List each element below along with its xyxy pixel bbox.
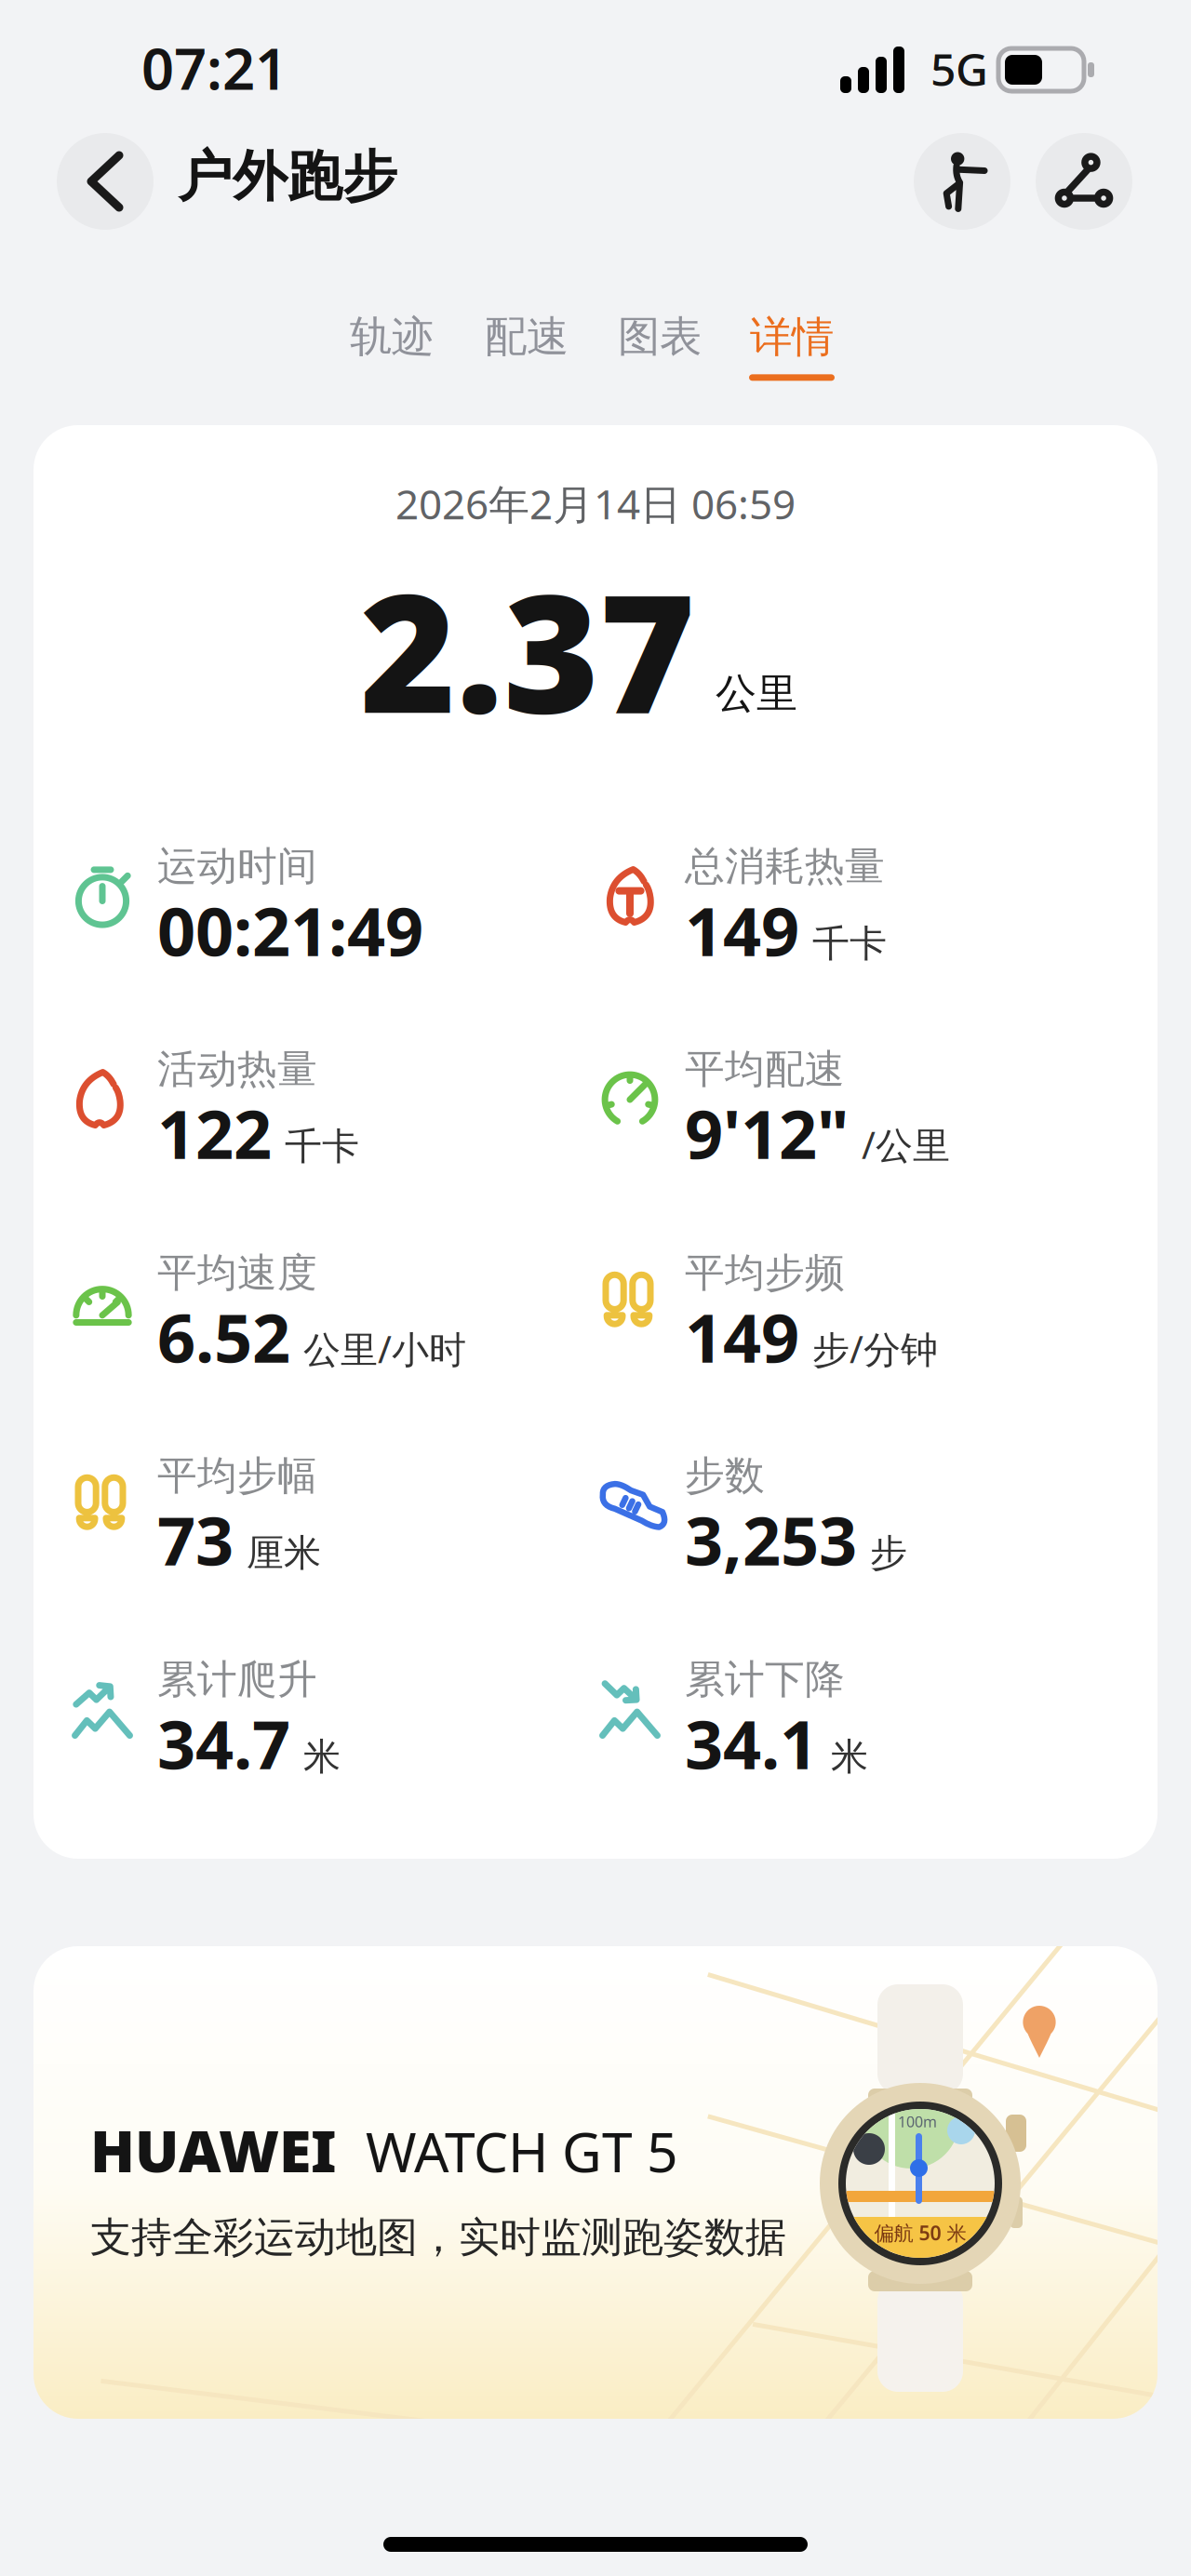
staticText: 步/分钟 xyxy=(812,1324,938,1373)
staticText: 2.37 xyxy=(360,541,695,758)
staticText: 千卡 xyxy=(812,921,887,967)
staticText: 3,253 xyxy=(685,1495,857,1584)
staticText: 149 xyxy=(685,886,799,975)
button[interactable]: Back xyxy=(57,133,154,230)
staticText: 配速 xyxy=(485,311,569,363)
staticText: 厘米 xyxy=(247,1530,321,1576)
staticText: 100m xyxy=(898,2112,937,2132)
staticText: HUAWEI WATCH GT 5 xyxy=(90,2111,678,2188)
staticText: 149 xyxy=(685,1292,799,1381)
staticText: 累计爬升 xyxy=(157,1655,317,1704)
staticText: 34.1 xyxy=(685,1699,818,1788)
staticText: 详情 xyxy=(750,311,834,363)
staticText: 平均步频 xyxy=(685,1248,845,1297)
staticText: 73 xyxy=(157,1495,234,1584)
staticText: 2026年2月14日 06:59 xyxy=(395,476,796,531)
staticText: 户外跑步 xyxy=(178,143,397,210)
button[interactable]: Track xyxy=(1036,133,1132,230)
button[interactable]: 轨迹 xyxy=(350,311,434,363)
staticText: 122 xyxy=(157,1088,272,1177)
staticText: 步数 xyxy=(685,1451,765,1500)
staticText: 07:21 xyxy=(141,30,288,105)
staticText: 步 xyxy=(870,1530,907,1576)
staticText: 6.52 xyxy=(157,1292,290,1381)
staticText: 00:21:49 xyxy=(157,886,423,975)
staticText: 米 xyxy=(831,1734,868,1780)
staticText: 偏航 50 米 xyxy=(874,2220,966,2246)
staticText: 米 xyxy=(303,1734,341,1780)
staticText: 活动热量 xyxy=(157,1045,317,1093)
staticText: 轨迹 xyxy=(350,311,434,363)
button[interactable]: 详情 xyxy=(749,311,835,381)
staticText: 累计下降 xyxy=(685,1655,845,1704)
staticText: 平均配速 xyxy=(685,1045,845,1093)
staticText: 5G xyxy=(930,39,988,98)
button[interactable]: HUAWEI WATCH GT 5 xyxy=(33,1946,1158,2419)
button[interactable]: Running posture xyxy=(914,133,1010,230)
button[interactable]: 图表 xyxy=(618,311,702,363)
button[interactable]: 配速 xyxy=(485,311,569,363)
staticText: 平均步幅 xyxy=(157,1451,317,1500)
staticText: 平均速度 xyxy=(157,1248,317,1297)
staticText: 图表 xyxy=(618,311,702,363)
staticText: 总消耗热量 xyxy=(685,842,885,891)
staticText: 千卡 xyxy=(285,1124,359,1169)
staticText: 9'12" xyxy=(685,1088,849,1177)
staticText: 支持全彩运动地图，实时监测跑姿数据 xyxy=(90,2212,786,2262)
staticText: 公里 xyxy=(716,668,797,719)
staticText: 34.7 xyxy=(157,1699,290,1788)
staticText: /公里 xyxy=(862,1120,950,1169)
staticText: 公里/小时 xyxy=(303,1324,466,1373)
staticText: 运动时间 xyxy=(157,842,317,891)
